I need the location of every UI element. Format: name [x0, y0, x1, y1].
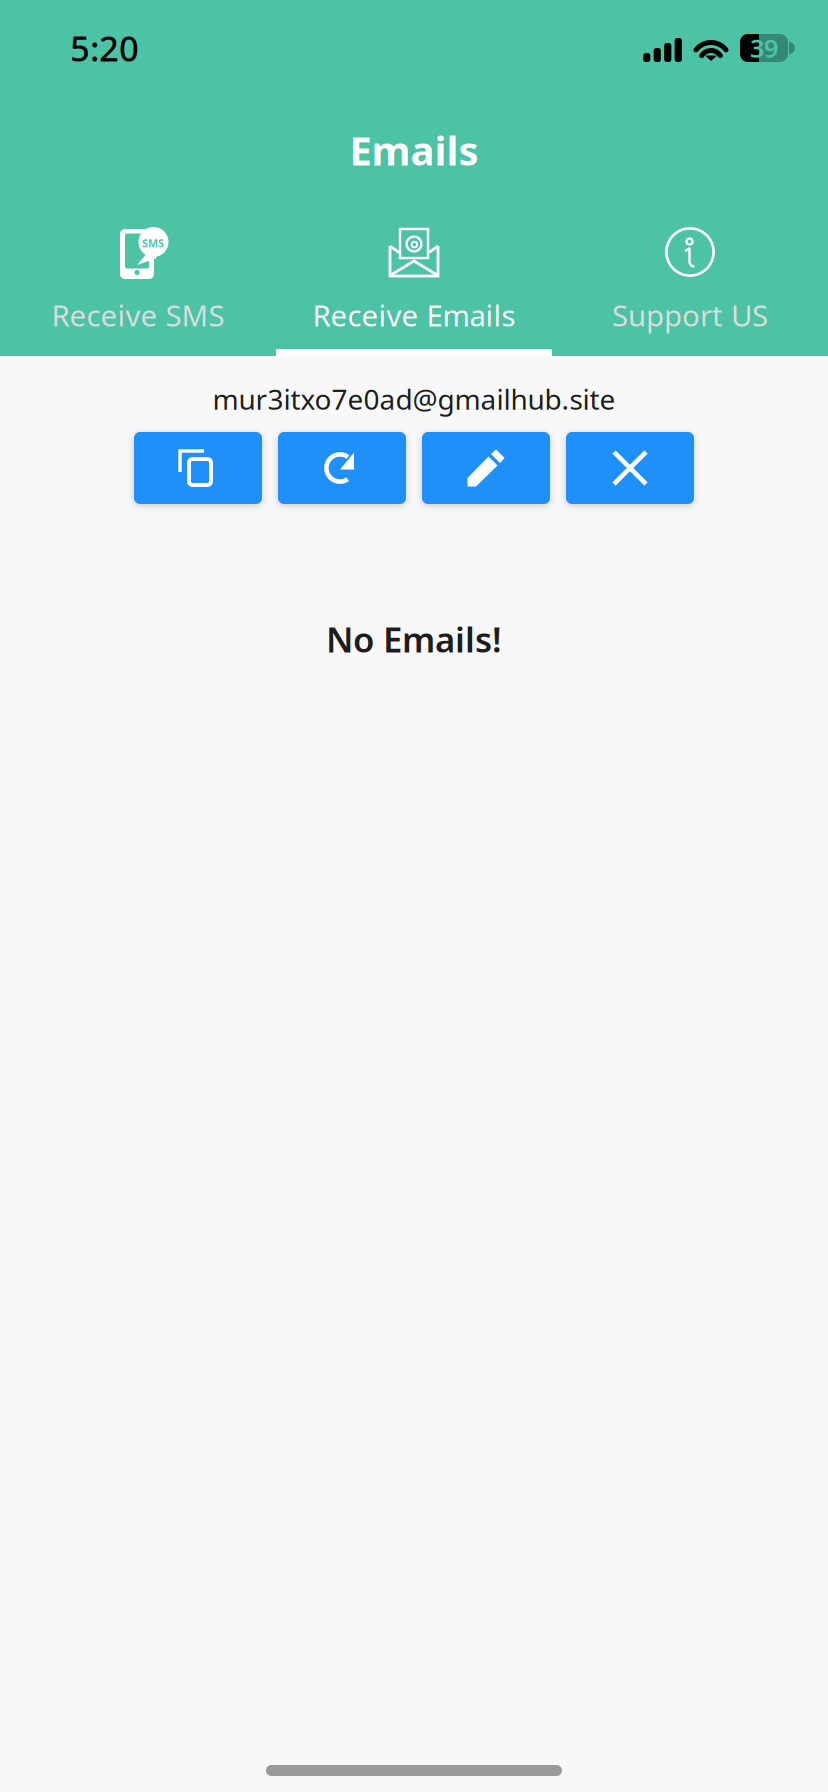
button[interactable]: Edit [422, 432, 550, 504]
staticText: mur3itxo7e0ad@gmailhub.site [212, 380, 615, 418]
button[interactable]: SMS [0, 204, 276, 356]
button[interactable]: Copy email address [134, 432, 262, 504]
staticText: 5:20 [70, 25, 139, 71]
staticText: Receive SMS [51, 295, 224, 334]
staticText: No Emails! [326, 616, 502, 662]
staticText: 39 [750, 31, 778, 65]
button[interactable]: Refresh [278, 432, 406, 504]
button[interactable]: Receive Emails [276, 204, 552, 356]
button[interactable]: Delete [566, 432, 694, 504]
staticText: Support US [612, 295, 768, 334]
staticText: SMS [142, 236, 164, 250]
button[interactable]: Support US [552, 204, 828, 356]
staticText: Receive Emails [312, 295, 515, 334]
staticText: Emails [349, 123, 478, 176]
